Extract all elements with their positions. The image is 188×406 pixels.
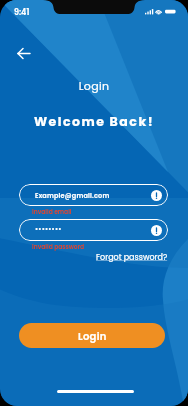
button[interactable]: •••••••• <box>19 219 168 241</box>
button[interactable]: Back <box>12 41 36 65</box>
staticText: •••••••• <box>35 224 62 233</box>
staticText: Login <box>0 78 188 93</box>
button[interactable]: Example@gmail.com <box>19 184 168 206</box>
staticText: Example@gmail.com <box>35 191 110 200</box>
staticText: 9:41 <box>14 7 30 18</box>
button[interactable]: Login <box>19 323 165 348</box>
staticText: Invalid email <box>32 208 72 216</box>
staticText: Login <box>78 329 107 343</box>
staticText: Welcome Back! <box>0 113 188 130</box>
button[interactable]: Forgot password? <box>96 252 168 263</box>
staticText: Invalid password <box>32 243 85 251</box>
